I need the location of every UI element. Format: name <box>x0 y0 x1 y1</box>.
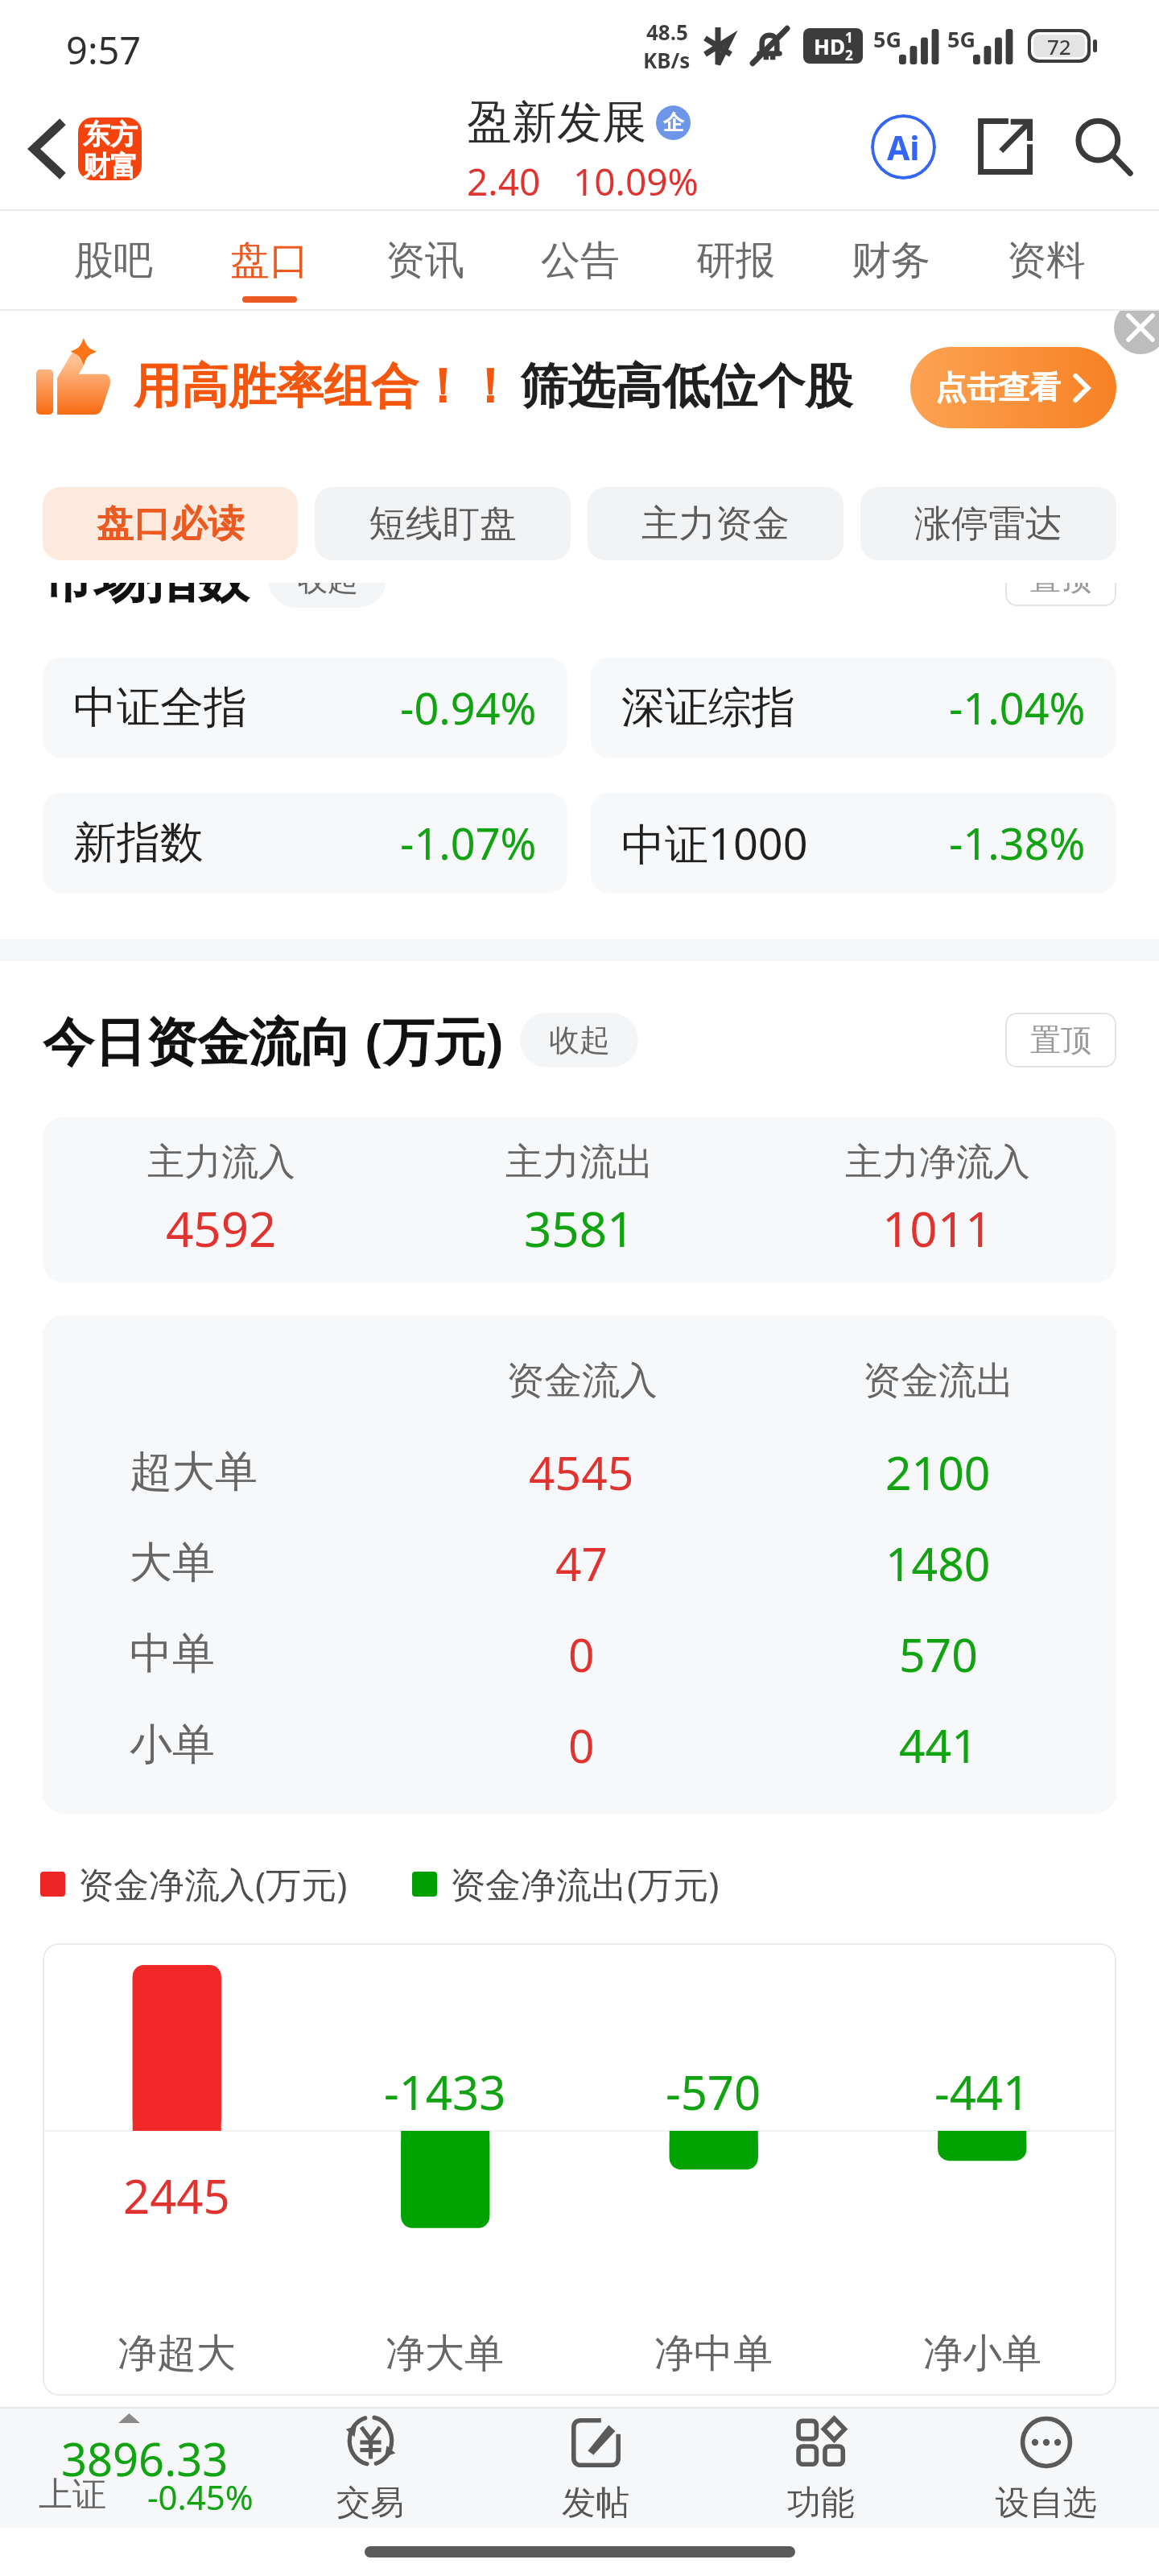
staticText: 功能 <box>787 2482 855 2524</box>
button[interactable]: 中证1000 <box>591 793 1116 893</box>
staticText: -570 <box>666 2060 761 2124</box>
staticText: HD <box>814 32 845 60</box>
staticText: 新指数 <box>73 815 204 870</box>
staticText: 主力资金 <box>641 501 790 547</box>
staticText: 企 <box>663 109 684 136</box>
staticText: 4592 <box>166 1195 277 1261</box>
staticText: 3581 <box>524 1195 635 1261</box>
staticText: 5G <box>947 24 975 54</box>
button[interactable]: 置顶 <box>1005 1013 1116 1067</box>
staticText: 1 <box>845 28 853 47</box>
staticText: 资金流出 <box>863 1357 1014 1405</box>
staticText: 市场指数 <box>43 583 249 612</box>
staticText: 今日资金流向 (万元) <box>43 1005 504 1075</box>
staticText: 47 <box>555 1532 608 1595</box>
staticText: 置顶 <box>1030 1021 1091 1059</box>
staticText: 主力净流入 <box>845 1139 1030 1186</box>
button[interactable]: 设自选 <box>934 2409 1159 2528</box>
staticText: 中证全指 <box>73 680 247 735</box>
staticText: 短线盯盘 <box>369 501 517 547</box>
staticText: -0.94% <box>400 678 537 737</box>
staticText: 设自选 <box>996 2482 1097 2524</box>
staticText: 资金净流入(万元) <box>78 1860 348 1908</box>
button[interactable]: 盘口必读 <box>43 487 298 560</box>
staticText: 大单 <box>130 1536 215 1590</box>
staticText: 上证 <box>39 2474 106 2516</box>
staticText: 主力流出 <box>505 1139 654 1186</box>
button[interactable]: 点击查看 <box>910 347 1116 428</box>
staticText: 超大单 <box>130 1445 258 1499</box>
button[interactable]: 收起 <box>268 583 386 608</box>
button[interactable]: 资料 <box>968 211 1124 309</box>
button[interactable]: 功能 <box>708 2409 934 2528</box>
staticText: 2445 <box>123 2164 230 2227</box>
button[interactable]: 研报 <box>658 211 813 309</box>
staticText: 公告 <box>541 236 620 286</box>
button[interactable]: 3896.33 <box>0 2409 258 2528</box>
button[interactable]: 新指数 <box>43 793 567 893</box>
staticText: -1.38% <box>949 813 1086 873</box>
staticText: 交易 <box>336 2482 404 2524</box>
staticText: 盈新发展 <box>467 94 647 151</box>
staticText: -1.04% <box>949 678 1086 737</box>
staticText: 4545 <box>529 1441 634 1504</box>
button[interactable]: 中证全指 <box>43 658 567 758</box>
button[interactable]: 置顶 <box>1005 583 1116 606</box>
staticText: 置顶 <box>1030 583 1091 598</box>
staticText: 盘口 <box>230 236 309 286</box>
button[interactable]: 收起 <box>520 1013 638 1067</box>
staticText: 资料 <box>1007 236 1086 286</box>
staticText: 收起 <box>549 1021 610 1059</box>
staticText: 涨停雷达 <box>914 501 1062 547</box>
button[interactable]: 短线盯盘 <box>315 487 571 560</box>
staticText: 72 <box>1047 32 1071 60</box>
staticText: 9:57 <box>66 24 142 76</box>
staticText: 财富 <box>83 149 138 180</box>
button[interactable]: 深证综指 <box>591 658 1116 758</box>
staticText: 净大单 <box>386 2329 504 2379</box>
staticText: 2.40 <box>467 156 541 207</box>
staticText: 研报 <box>696 236 775 286</box>
button[interactable]: 涨停雷达 <box>860 487 1116 560</box>
staticText: 股吧 <box>74 236 153 286</box>
button[interactable]: Share <box>959 101 1050 192</box>
staticText: 3896.33 <box>61 2428 229 2489</box>
staticText: 48.5 <box>646 18 688 46</box>
button[interactable]: Close advertisement <box>1114 311 1159 354</box>
staticText: 10.09% <box>573 156 699 207</box>
button[interactable]: 主力资金 <box>588 487 843 560</box>
button[interactable]: 公告 <box>502 211 658 309</box>
staticText: 570 <box>899 1623 978 1686</box>
button[interactable]: 股吧 <box>35 211 192 309</box>
staticText: KB/s <box>643 46 691 74</box>
staticText: 发帖 <box>562 2482 629 2524</box>
staticText: 资金流入 <box>506 1357 658 1405</box>
staticText: -1.07% <box>400 813 537 873</box>
button[interactable]: 发帖 <box>483 2409 708 2528</box>
staticText: 中证1000 <box>621 813 808 873</box>
staticText: 筛选高低位个股 <box>520 357 852 416</box>
button[interactable]: 主力流入 <box>43 1117 1116 1282</box>
button[interactable]: 交易 <box>258 2409 483 2528</box>
button[interactable]: 盘口 <box>192 211 347 309</box>
button[interactable]: 财务 <box>813 211 968 309</box>
button[interactable]: Back <box>13 105 80 193</box>
staticText: 2 <box>845 46 853 64</box>
button[interactable]: 资讯 <box>347 211 502 309</box>
staticText: 收起 <box>297 583 358 599</box>
staticText: 财务 <box>852 236 930 286</box>
staticText: -0.45% <box>147 2474 254 2520</box>
button[interactable]: AI assistant <box>858 101 948 192</box>
staticText: 5G <box>873 24 901 54</box>
staticText: 中单 <box>130 1627 215 1681</box>
staticText: 资讯 <box>386 236 464 286</box>
staticText: Ai <box>887 125 920 170</box>
staticText: -1433 <box>384 2060 506 2124</box>
button[interactable]: Search <box>1058 101 1149 192</box>
staticText: 净小单 <box>923 2329 1041 2379</box>
staticText: 资金净流出(万元) <box>450 1860 720 1908</box>
staticText: 东方 <box>83 118 138 152</box>
button[interactable]: East Money <box>78 118 142 180</box>
button[interactable]: 用高胜率组合！！ <box>0 311 1159 485</box>
staticText: 主力流入 <box>147 1139 295 1186</box>
